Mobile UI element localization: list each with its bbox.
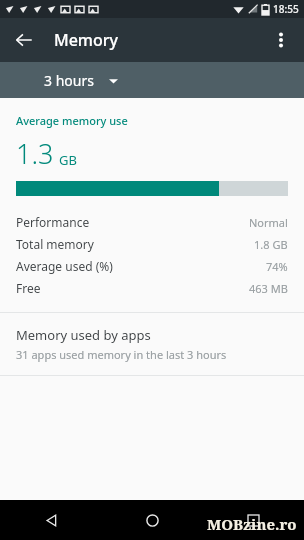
staticText: 1.8 GB [254, 237, 288, 252]
staticText: Performance [16, 214, 90, 230]
button[interactable]: 3 hours [40, 65, 126, 96]
button[interactable]: Back [0, 500, 102, 540]
staticText: Normal [249, 215, 288, 230]
button[interactable]: Recent apps [203, 500, 304, 540]
staticText: MOBzine.ro [207, 514, 297, 534]
staticText: GB [59, 151, 77, 169]
button[interactable]: Memory used by apps [0, 313, 304, 375]
staticText: 18:55 [273, 2, 299, 16]
button[interactable]: Free [0, 277, 304, 299]
staticText: Memory used by apps [16, 326, 151, 344]
button[interactable]: More options [262, 21, 300, 59]
staticText: Memory [54, 29, 119, 51]
staticText: Average used (%) [16, 258, 113, 274]
staticText: 31 apps used memory in the last 3 hours [16, 347, 227, 362]
button[interactable]: Home [102, 500, 203, 540]
staticText: 3 hours [44, 71, 94, 90]
button[interactable]: Average used (%) [0, 255, 304, 277]
button[interactable]: Performance [0, 211, 304, 233]
staticText: Free [16, 280, 41, 296]
button[interactable]: Navigate up [5, 21, 43, 59]
button[interactable]: Total memory [0, 233, 304, 255]
staticText: Total memory [16, 236, 94, 252]
staticText: 74% [266, 259, 288, 274]
staticText: 463 MB [249, 281, 288, 296]
staticText: 1.3 [16, 135, 54, 172]
staticText: Average memory use [16, 113, 128, 128]
